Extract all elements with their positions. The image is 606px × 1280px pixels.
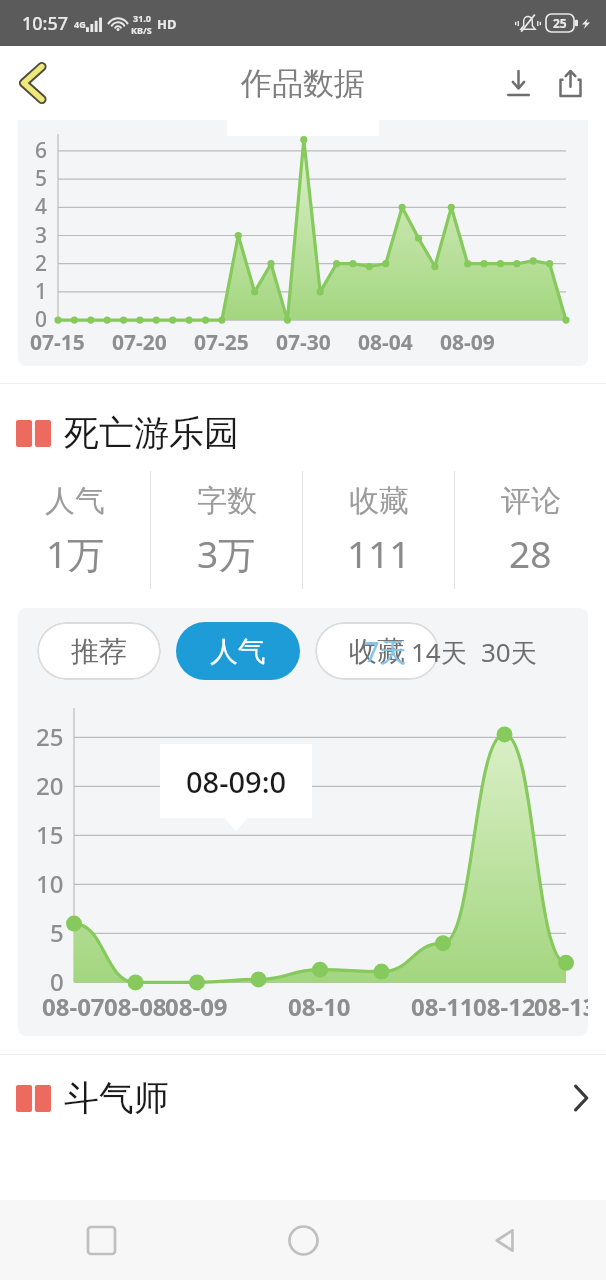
staticText: 31.0 [133,12,151,24]
staticText: 4G [74,18,86,30]
staticText: 人气 [45,482,105,520]
button[interactable]: Download [492,57,544,109]
staticText: 08-04 [358,328,413,357]
staticText: 7天 [364,633,407,670]
staticText: 08-12 [473,990,536,1023]
staticText: 07-30 [276,328,331,357]
staticText: 5 [50,916,64,949]
staticText: 07-15 [30,328,85,357]
staticText: 08-09 [440,328,495,357]
button[interactable]: 斗气师 [16,1055,590,1141]
staticText: 15 [36,818,64,851]
staticText: 收藏 [349,482,409,520]
button[interactable]: 30天 [481,634,537,670]
staticText: 推荐 [71,634,127,669]
staticText: 25 [553,15,567,31]
staticText: 4 [35,192,48,221]
button[interactable]: 推荐 [37,622,161,680]
button[interactable]: 人气 [176,622,300,680]
button[interactable]: 7天 [364,633,407,670]
button[interactable]: Back [4,54,62,112]
staticText: 14天 [411,634,467,670]
staticText: 6 [35,136,48,165]
staticText: 1万 [46,528,105,579]
button[interactable]: 14天 [411,634,467,670]
staticText: 人气 [210,634,266,669]
button[interactable]: Share [544,57,596,109]
staticText: 07-25 [194,328,249,357]
staticText: KB/S [131,24,152,36]
staticText: 死亡游乐园 [64,411,239,455]
staticText: 30天 [481,634,537,670]
button[interactable]: 人气 [0,468,150,592]
staticText: 2 [35,249,48,278]
staticText: 10:57 [22,11,69,36]
staticText: 作品数据 [241,64,365,103]
staticText: 字数 [197,482,257,520]
button[interactable]: 收藏 [315,622,439,680]
staticText: 评论 [501,482,561,520]
staticText: 0 [35,305,48,334]
staticText: 08-10 [288,990,351,1023]
staticText: HD [157,15,177,33]
staticText: 25 [36,720,64,753]
staticText: 08-11 [411,990,474,1023]
staticText: 28 [509,528,552,578]
button[interactable]: 字数 [151,468,302,592]
staticText: 08-07 [42,990,105,1023]
staticText: 111 [347,528,411,578]
staticText: 1 [35,277,48,306]
staticText: 0 [50,965,64,998]
staticText: 5 [35,164,48,193]
staticText: 3 [35,221,48,250]
button[interactable]: 评论 [455,468,606,592]
staticText: 08-09:0 [186,762,287,801]
staticText: 斗气师 [64,1076,169,1120]
staticText: 3万 [197,528,256,579]
button[interactable]: 收藏 [303,468,454,592]
staticText: 08-13 [534,990,588,1023]
button[interactable]: Recents [0,1200,202,1280]
button[interactable]: 死亡游乐园 [16,404,606,462]
staticText: 收藏 [349,634,405,669]
staticText: 08-09 [165,990,228,1023]
button[interactable]: Back [404,1200,606,1280]
button[interactable]: Home [202,1200,404,1280]
staticText: 10 [36,867,64,900]
staticText: 07-20 [112,328,167,357]
staticText: 08-08 [104,990,167,1023]
staticText: 20 [36,769,64,802]
